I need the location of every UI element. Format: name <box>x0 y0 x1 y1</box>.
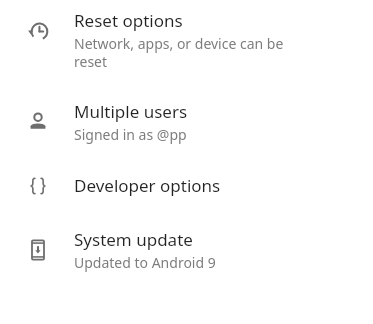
staticText: Developer options <box>74 174 221 197</box>
other: System update <box>26 238 50 262</box>
staticText: Updated to Android 9 <box>74 253 216 272</box>
other: Reset options <box>26 19 50 43</box>
staticText: Network, apps, or device can be reset <box>74 34 284 71</box>
button[interactable]: Multiple users <box>0 89 373 163</box>
staticText: System update <box>74 228 193 251</box>
other: Developer options <box>26 174 50 198</box>
button[interactable]: Developer options <box>0 163 373 217</box>
staticText: Reset options <box>74 9 183 32</box>
button[interactable]: Reset options <box>0 0 373 89</box>
button[interactable]: System update <box>0 217 373 287</box>
staticText: Multiple users <box>74 100 188 123</box>
staticText: Signed in as @pp <box>74 125 187 144</box>
other: Multiple users <box>26 110 50 134</box>
